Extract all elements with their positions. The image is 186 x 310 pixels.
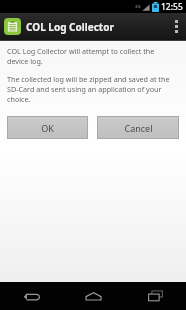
button[interactable]: Recent apps (124, 282, 186, 310)
button[interactable]: Back (0, 282, 62, 310)
button[interactable]: Cancel (97, 116, 179, 139)
staticText: OK (41, 122, 54, 134)
staticText: The collected log will be zipped and sav… (7, 74, 177, 104)
button[interactable]: App icon (4, 18, 21, 35)
staticText: 3G (135, 4, 141, 10)
staticText: 12:55 (161, 1, 183, 13)
button[interactable]: More options (166, 13, 186, 40)
button[interactable]: OK (7, 116, 88, 139)
staticText: Cancel (124, 122, 153, 134)
staticText: COL Log Collector will attempt to collec… (7, 46, 177, 66)
button[interactable]: Home (62, 282, 124, 310)
staticText: COL Log Collector (26, 20, 114, 34)
